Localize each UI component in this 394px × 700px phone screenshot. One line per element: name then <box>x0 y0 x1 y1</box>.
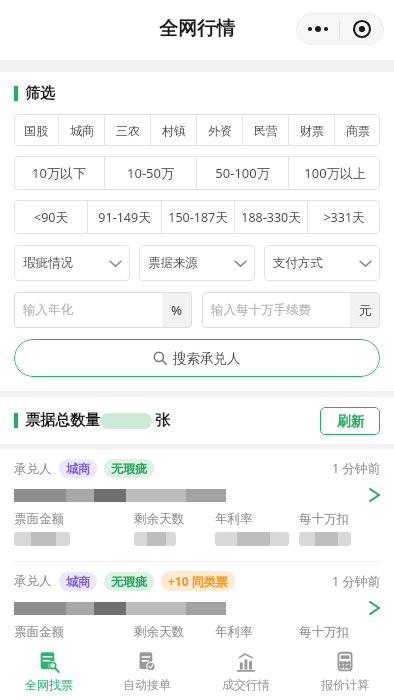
button[interactable]: 承兑人 <box>0 450 394 561</box>
staticText: 张 <box>155 411 170 430</box>
staticText: 村镇 <box>162 123 186 138</box>
staticText: 输入年化 <box>23 302 73 318</box>
button[interactable]: 瑕疵情况 <box>14 245 130 281</box>
staticText: 承兑人 <box>14 461 52 477</box>
button[interactable]: 188-330天 <box>235 200 307 234</box>
staticText: 每十万扣 <box>299 624 349 640</box>
staticText: 每十万扣 <box>299 511 349 527</box>
staticText: 剩余天数 <box>134 511 184 527</box>
staticText: 输入每十万手续费 <box>211 302 311 318</box>
button[interactable]: 商票 <box>335 114 380 146</box>
button[interactable]: More <box>296 13 339 45</box>
button[interactable]: 国股 <box>14 114 58 146</box>
staticText: <90天 <box>34 209 68 226</box>
button[interactable]: 财票 <box>289 114 334 146</box>
staticText: 1 分钟前 <box>332 573 380 590</box>
staticText: 票据总数量 <box>25 411 100 430</box>
staticText: 成交行情 <box>222 677 270 692</box>
staticText: 外资 <box>208 123 232 138</box>
button[interactable]: 100万以上 <box>289 156 380 190</box>
button[interactable]: 10-50万 <box>105 156 196 190</box>
button[interactable]: 输入年化 <box>14 292 192 328</box>
button[interactable]: 三农 <box>105 114 150 146</box>
button[interactable]: 刷新 <box>320 407 380 435</box>
staticText: 自动接单 <box>123 677 171 692</box>
staticText: 国股 <box>24 123 48 138</box>
staticText: 票面金额 <box>14 511 64 527</box>
button[interactable]: 10万以下 <box>14 156 104 190</box>
staticText: 无瑕疵 <box>111 574 147 589</box>
button[interactable]: 搜索承兑人 <box>14 339 380 377</box>
staticText: 50-100万 <box>215 164 270 182</box>
staticText: 承兑人 <box>14 573 52 589</box>
staticText: 10万以下 <box>32 164 86 182</box>
staticText: 票据来源 <box>148 255 198 271</box>
button[interactable]: 全网找票 <box>0 644 98 700</box>
button[interactable]: 票据来源 <box>139 245 255 281</box>
staticText: 瑕疵情况 <box>23 255 73 271</box>
staticText: 年利率 <box>215 511 253 527</box>
staticText: 支付方式 <box>273 255 323 271</box>
staticText: +10 同类票 <box>168 573 228 589</box>
staticText: % <box>171 301 183 319</box>
staticText: 无瑕疵 <box>111 461 147 476</box>
staticText: 城商 <box>66 574 90 589</box>
button[interactable]: 城商 <box>59 114 104 146</box>
staticText: 城商 <box>70 123 94 138</box>
button[interactable]: 150-187天 <box>162 200 234 234</box>
staticText: 商票 <box>346 123 370 138</box>
button[interactable]: >331天 <box>308 200 380 234</box>
staticText: 城商 <box>66 461 90 476</box>
staticText: 1 分钟前 <box>332 460 380 477</box>
button[interactable]: 成交行情 <box>196 644 295 700</box>
staticText: 188-330天 <box>241 209 301 226</box>
staticText: 全网行情 <box>159 17 235 41</box>
staticText: 100万以上 <box>304 164 366 182</box>
staticText: 三农 <box>116 123 140 138</box>
staticText: 元 <box>359 302 372 318</box>
button[interactable]: 村镇 <box>151 114 196 146</box>
staticText: 报价计算 <box>321 677 369 692</box>
staticText: 91-149天 <box>98 209 151 226</box>
staticText: 全网找票 <box>25 677 73 692</box>
button[interactable]: Target <box>340 13 384 45</box>
staticText: 票面金额 <box>14 624 64 640</box>
button[interactable]: 输入每十万手续费 <box>202 292 380 328</box>
button[interactable]: 承兑人 <box>0 562 394 674</box>
staticText: 筛选 <box>25 84 55 103</box>
button[interactable]: <90天 <box>14 200 87 234</box>
button[interactable]: 支付方式 <box>264 245 380 281</box>
staticText: 财票 <box>300 123 324 138</box>
button[interactable]: 50-100万 <box>197 156 288 190</box>
staticText: 10-50万 <box>127 164 174 182</box>
button[interactable]: 自动接单 <box>98 644 196 700</box>
button[interactable]: 外资 <box>197 114 242 146</box>
staticText: 民营 <box>254 123 278 138</box>
button[interactable]: 民营 <box>243 114 288 146</box>
staticText: 剩余天数 <box>134 624 184 640</box>
staticText: 搜索承兑人 <box>173 350 241 367</box>
staticText: 刷新 <box>337 413 364 430</box>
button[interactable]: 报价计算 <box>295 644 394 700</box>
button[interactable]: 91-149天 <box>88 200 161 234</box>
staticText: 150-187天 <box>168 209 228 226</box>
staticText: >331天 <box>323 209 365 226</box>
staticText: 年利率 <box>215 624 253 640</box>
